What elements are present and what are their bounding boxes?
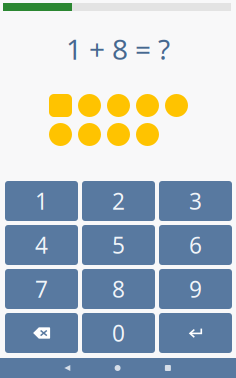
- staticText: 7: [35, 274, 48, 304]
- staticText: 1 + 8 = ?: [66, 30, 170, 68]
- button[interactable]: Recent apps: [146, 358, 190, 378]
- button[interactable]: 5: [82, 225, 155, 265]
- button[interactable]: 7: [5, 269, 78, 309]
- button[interactable]: 3: [159, 181, 232, 221]
- button[interactable]: Home: [96, 358, 140, 378]
- staticText: 6: [189, 230, 202, 260]
- staticText: 8: [112, 274, 125, 304]
- button[interactable]: [159, 313, 232, 353]
- staticText: 9: [189, 274, 202, 304]
- button[interactable]: 9: [159, 269, 232, 309]
- button[interactable]: 4: [5, 225, 78, 265]
- staticText: 3: [189, 186, 202, 216]
- button[interactable]: 2: [82, 181, 155, 221]
- button[interactable]: 1: [5, 181, 78, 221]
- staticText: 4: [35, 230, 48, 260]
- staticText: 1: [35, 186, 48, 216]
- staticText: 5: [112, 230, 125, 260]
- button[interactable]: Back: [45, 358, 89, 378]
- staticText: 2: [112, 186, 125, 216]
- button[interactable]: 8: [82, 269, 155, 309]
- button[interactable]: 0: [82, 313, 155, 353]
- button[interactable]: [5, 313, 78, 353]
- button[interactable]: 6: [159, 225, 232, 265]
- staticText: 0: [112, 318, 125, 348]
